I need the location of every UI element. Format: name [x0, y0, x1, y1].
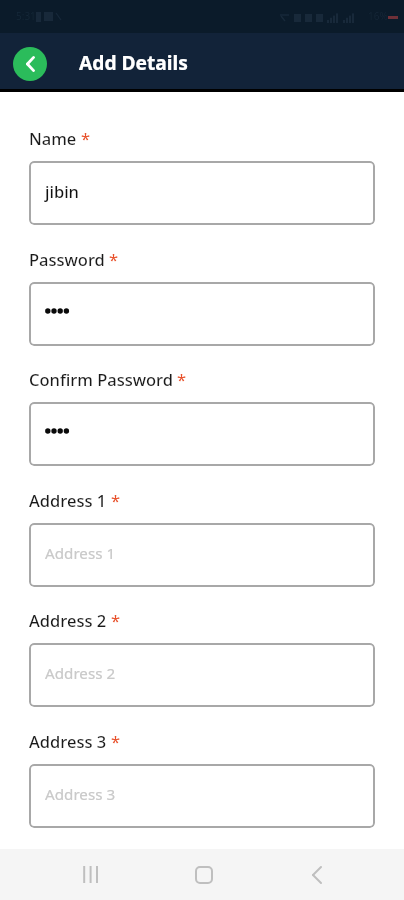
button[interactable]: Confirm Password input field — [29, 402, 375, 466]
staticText: Address 3 — [29, 730, 107, 752]
staticText: Add Details — [79, 49, 188, 75]
staticText: * — [177, 368, 187, 390]
staticText: Address 1 — [45, 543, 116, 564]
staticText: * — [109, 248, 119, 270]
staticText: Address 1 — [29, 489, 107, 511]
staticText: * — [111, 609, 121, 631]
button[interactable]: Recent apps — [58, 849, 123, 900]
staticText: * — [111, 489, 121, 511]
staticText: * — [111, 730, 121, 752]
button[interactable]: Address 2 input field — [29, 643, 375, 707]
button[interactable]: Address 3 input field — [29, 764, 375, 828]
button[interactable]: Back — [13, 47, 47, 81]
staticText: 5:31 — [16, 9, 36, 23]
button[interactable]: Name input field — [29, 161, 375, 225]
staticText: Confirm Password — [29, 368, 173, 390]
staticText: Address 2 — [45, 663, 116, 684]
staticText: Password — [29, 248, 105, 270]
staticText: Address 2 — [29, 609, 107, 631]
staticText: Address 3 — [45, 784, 116, 805]
button[interactable]: Password input field — [29, 282, 375, 346]
staticText: Name — [29, 127, 77, 149]
staticText: * — [81, 127, 91, 149]
button[interactable]: Back — [284, 849, 349, 900]
button[interactable]: Address 1 input field — [29, 523, 375, 587]
button[interactable]: Home — [171, 849, 236, 900]
staticText: jibin — [45, 180, 79, 202]
